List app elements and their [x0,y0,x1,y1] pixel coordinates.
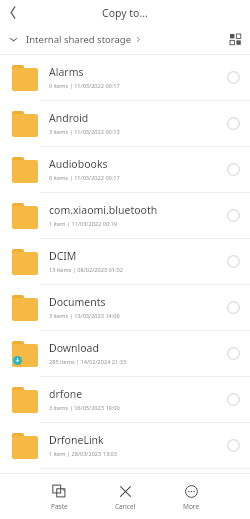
staticText: 3 items | 16/05/2023 19:00 [49,404,120,412]
staticText: DrfoneLink [49,433,104,447]
staticText: Download [49,341,99,355]
button[interactable]: DCIM [0,239,250,284]
staticText: 0 items | 11/03/2022 00:17 [49,174,120,182]
button[interactable]: Android [0,101,250,146]
staticText: Fonts [49,479,77,493]
button[interactable]: Fonts [0,469,250,514]
button[interactable]: drfone [0,377,250,422]
button[interactable]: DrfoneLink [0,423,250,468]
staticText: 3 items | 11/03/2022 00:13 [49,128,120,136]
button[interactable]: com.xiaomi.bluetooth [0,193,250,238]
button[interactable]: Select Android [216,101,250,146]
staticText: com.xiaomi.bluetooth [49,203,158,217]
button[interactable]: Change view [220,25,250,54]
staticText: Audiobooks [49,157,108,171]
button[interactable]: Select Download [216,331,250,376]
staticText: DCIM [49,249,77,263]
staticText: Copy to... [102,6,148,20]
staticText: Android [49,111,89,125]
staticText: Documents [49,295,106,309]
button[interactable]: More [169,483,213,511]
staticText: 13 items | 08/02/2023 01:02 [49,266,123,274]
staticText: 3 items | 13/03/2023 14:06 [49,312,120,320]
button[interactable]: Back [0,0,25,25]
button[interactable]: Download [0,331,250,376]
staticText: Cancel [115,502,136,511]
staticText: Paste [51,502,68,511]
staticText: 0 items | 11/03/2022 00:17 [49,82,120,90]
button[interactable]: Cancel [103,483,147,511]
button[interactable]: Select Alarms [216,55,250,100]
button[interactable]: Alarms [0,55,250,100]
button[interactable]: Audiobooks [0,147,250,192]
staticText: drfone [49,387,83,401]
staticText: Alarms [49,65,84,79]
button[interactable]: Select drfone [216,377,250,422]
button[interactable]: Documents [0,285,250,330]
staticText: Internal shared storage [26,33,132,46]
button[interactable]: Select Documents [216,285,250,330]
button[interactable]: Internal shared storage [26,33,142,46]
button[interactable]: Select com.xiaomi.bluetooth [216,193,250,238]
staticText: 1 item | 11/03/2022 00:19 [49,220,118,228]
button[interactable]: Expand storage list [0,25,26,54]
button[interactable]: Select DrfoneLink [216,423,250,468]
button[interactable]: Select Audiobooks [216,147,250,192]
button[interactable]: Select DCIM [216,239,250,284]
staticText: 0 items | 25/05/2022 16:22 [49,496,120,504]
staticText: 285 items | 14/02/2024 21:33 [49,358,127,366]
button[interactable]: Paste [37,483,81,511]
staticText: More [183,502,200,511]
staticText: 1 item | 28/03/2023 13:03 [49,450,118,458]
